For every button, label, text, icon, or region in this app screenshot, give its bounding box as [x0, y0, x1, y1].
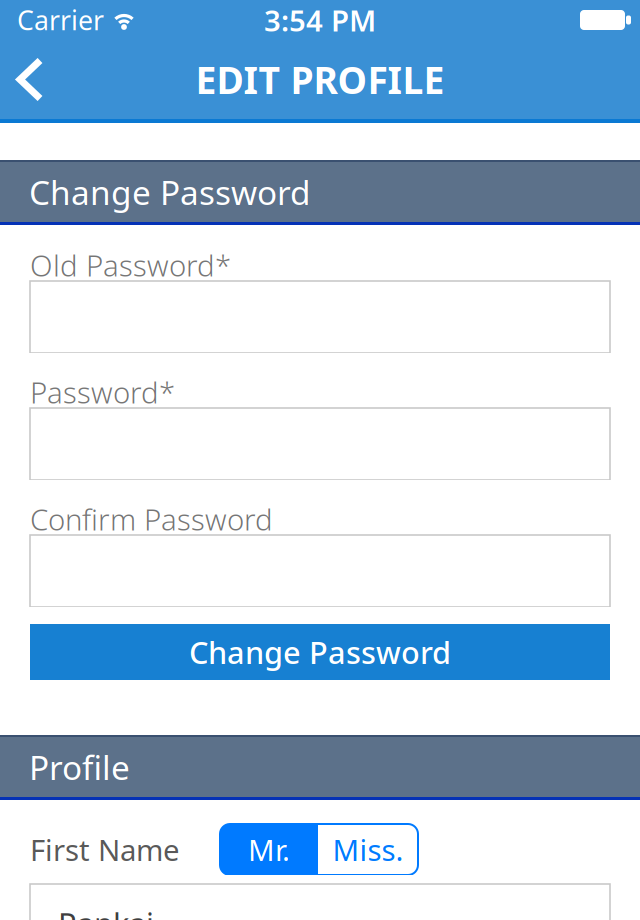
staticText: Confirm Password	[30, 499, 273, 538]
staticText: Password*	[30, 372, 175, 411]
staticText: EDIT PROFILE	[195, 55, 444, 104]
staticText: Mr.	[248, 830, 290, 869]
staticText: 3:54 PM	[264, 0, 376, 39]
staticText: Carrier	[17, 2, 104, 38]
staticText: Old Password*	[30, 245, 231, 284]
button[interactable]: Miss.	[318, 824, 418, 875]
button[interactable]: Change Password	[30, 624, 610, 680]
staticText: First Name	[30, 830, 180, 869]
staticText: Change Password	[29, 170, 311, 214]
staticText: Change Password	[189, 632, 451, 672]
staticText: Pankaj	[58, 903, 154, 920]
staticText: Miss.	[332, 830, 403, 869]
button[interactable]: Mr.	[220, 824, 318, 875]
staticText: Profile	[29, 745, 130, 789]
button[interactable]: Back	[0, 48, 46, 110]
